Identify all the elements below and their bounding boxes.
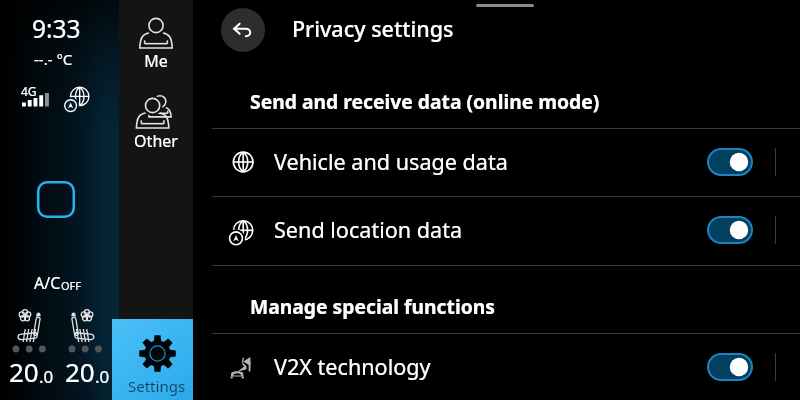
- staticText: Settings: [128, 376, 186, 396]
- button[interactable]: Toggle: [707, 216, 753, 244]
- staticText: --.- °C: [34, 49, 73, 69]
- button[interactable]: Toggle: [707, 148, 753, 176]
- staticText: Manage special functions: [250, 293, 495, 319]
- button[interactable]: Vehicle and usage data: [193, 128, 800, 195]
- button[interactable]: Back: [221, 8, 265, 52]
- staticText: Other: [119, 130, 193, 152]
- button[interactable]: Seat climate: [10, 302, 62, 394]
- button[interactable]: V2X technology: [193, 333, 800, 400]
- staticText: 20: [9, 354, 39, 389]
- staticText: 20: [65, 354, 95, 389]
- staticText: 4G: [21, 83, 37, 99]
- staticText: Me: [119, 50, 193, 72]
- button[interactable]: Seat climate: [66, 302, 118, 394]
- button[interactable]: Online services: [63, 84, 90, 112]
- staticText: V2X technology: [274, 352, 431, 381]
- staticText: Send and receive data (online mode): [250, 88, 600, 114]
- button[interactable]: 9:33: [32, 12, 81, 45]
- staticText: .0: [95, 365, 110, 388]
- staticText: Privacy settings: [292, 14, 454, 43]
- button[interactable]: Network signal: [21, 84, 50, 108]
- staticText: Vehicle and usage data: [274, 147, 508, 176]
- button[interactable]: A/C: [34, 272, 82, 294]
- button[interactable]: Other: [119, 87, 193, 162]
- other: Settings: [139, 335, 176, 372]
- button[interactable]: Me: [119, 7, 193, 82]
- button[interactable]: Send location data: [193, 196, 800, 263]
- button[interactable]: Settings: [112, 319, 193, 400]
- staticText: A/C: [34, 272, 61, 294]
- button[interactable]: Climate: [37, 181, 75, 218]
- staticText: .0: [39, 365, 54, 388]
- staticText: OFF: [61, 278, 82, 293]
- button[interactable]: Toggle: [707, 353, 753, 381]
- staticText: Send location data: [274, 215, 463, 244]
